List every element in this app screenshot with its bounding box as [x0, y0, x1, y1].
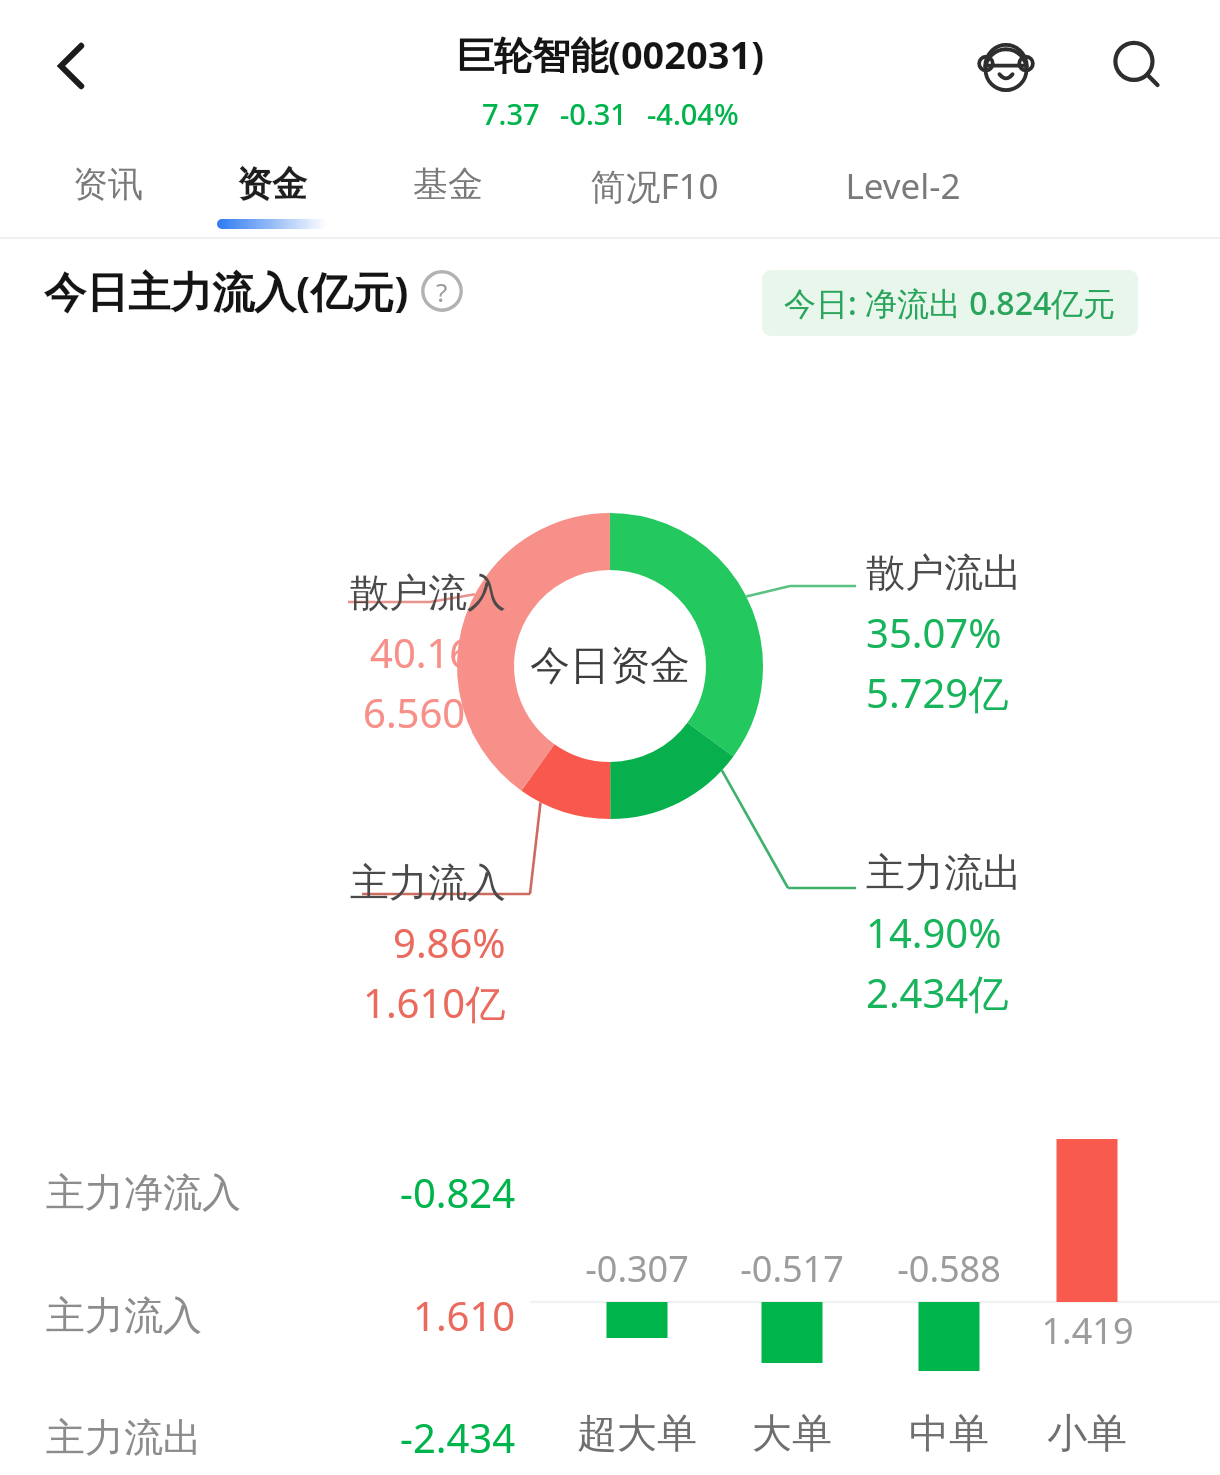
staticText: 超大单 — [577, 1408, 697, 1458]
button[interactable]: Profile — [960, 20, 1052, 112]
staticText: -0.31 — [560, 94, 627, 133]
staticText: 小单 — [1047, 1408, 1127, 1458]
staticText: -0.517 — [740, 1244, 844, 1293]
staticText: -4.04% — [647, 94, 739, 133]
button[interactable]: Help — [419, 268, 465, 314]
staticText: 散户流出 — [866, 548, 1022, 597]
staticText: 大单 — [752, 1408, 832, 1458]
staticText: 资金 — [237, 162, 307, 206]
staticText: 2.434亿 — [866, 965, 1009, 1020]
staticText: 主力净流入 — [46, 1168, 241, 1217]
staticText: 今日资金 — [530, 640, 690, 690]
button[interactable]: Level-2 — [808, 162, 998, 210]
button[interactable]: 资讯 — [44, 162, 172, 206]
staticText: 今日: 净流出 0.824亿元 — [784, 281, 1116, 325]
button[interactable]: 大单 — [697, 1408, 887, 1458]
button[interactable]: 资金 — [208, 162, 336, 229]
button[interactable]: 中单 — [854, 1408, 1044, 1458]
staticText: 主力流入 — [46, 1291, 202, 1340]
staticText: 1.610亿 — [363, 975, 506, 1030]
button[interactable]: Search — [1092, 20, 1184, 112]
staticText: 5.729亿 — [866, 665, 1009, 720]
staticText: 1.419 — [1041, 1306, 1134, 1355]
staticText: 散户流入 — [350, 568, 506, 617]
button[interactable]: Back — [24, 18, 120, 114]
staticText: -0.824 — [400, 1165, 516, 1219]
button[interactable]: 小单 — [992, 1408, 1182, 1458]
staticText: -0.588 — [897, 1244, 1001, 1293]
staticText: -2.434 — [400, 1410, 516, 1464]
staticText: 主力流入 — [350, 858, 506, 907]
staticText: 40.16% — [370, 625, 506, 679]
staticText: Level-2 — [845, 162, 961, 210]
staticText: 今日主力流入(亿元) — [44, 262, 409, 319]
staticText: 9.86% — [393, 915, 506, 969]
staticText: 基金 — [413, 162, 483, 206]
button[interactable]: 基金 — [384, 162, 512, 206]
staticText: 资讯 — [73, 162, 143, 206]
staticText: 简况F10 — [590, 162, 719, 210]
staticText: 主力流出 — [46, 1413, 202, 1462]
staticText: 1.610 — [413, 1288, 516, 1342]
staticText: ? — [436, 274, 448, 309]
staticText: 35.07% — [866, 605, 1002, 659]
staticText: 主力流出 — [866, 848, 1022, 897]
staticText: 巨轮智能(002031) — [456, 28, 765, 80]
button[interactable]: 简况F10 — [556, 162, 752, 210]
button[interactable]: 超大单 — [542, 1408, 732, 1458]
staticText: 14.90% — [866, 905, 1002, 959]
button[interactable]: 今日: 净流出 0.824亿元 — [762, 270, 1138, 336]
staticText: 中单 — [909, 1408, 989, 1458]
staticText: 6.560亿 — [363, 685, 506, 740]
staticText: -0.307 — [585, 1244, 689, 1293]
staticText: 7.37 — [482, 94, 540, 133]
